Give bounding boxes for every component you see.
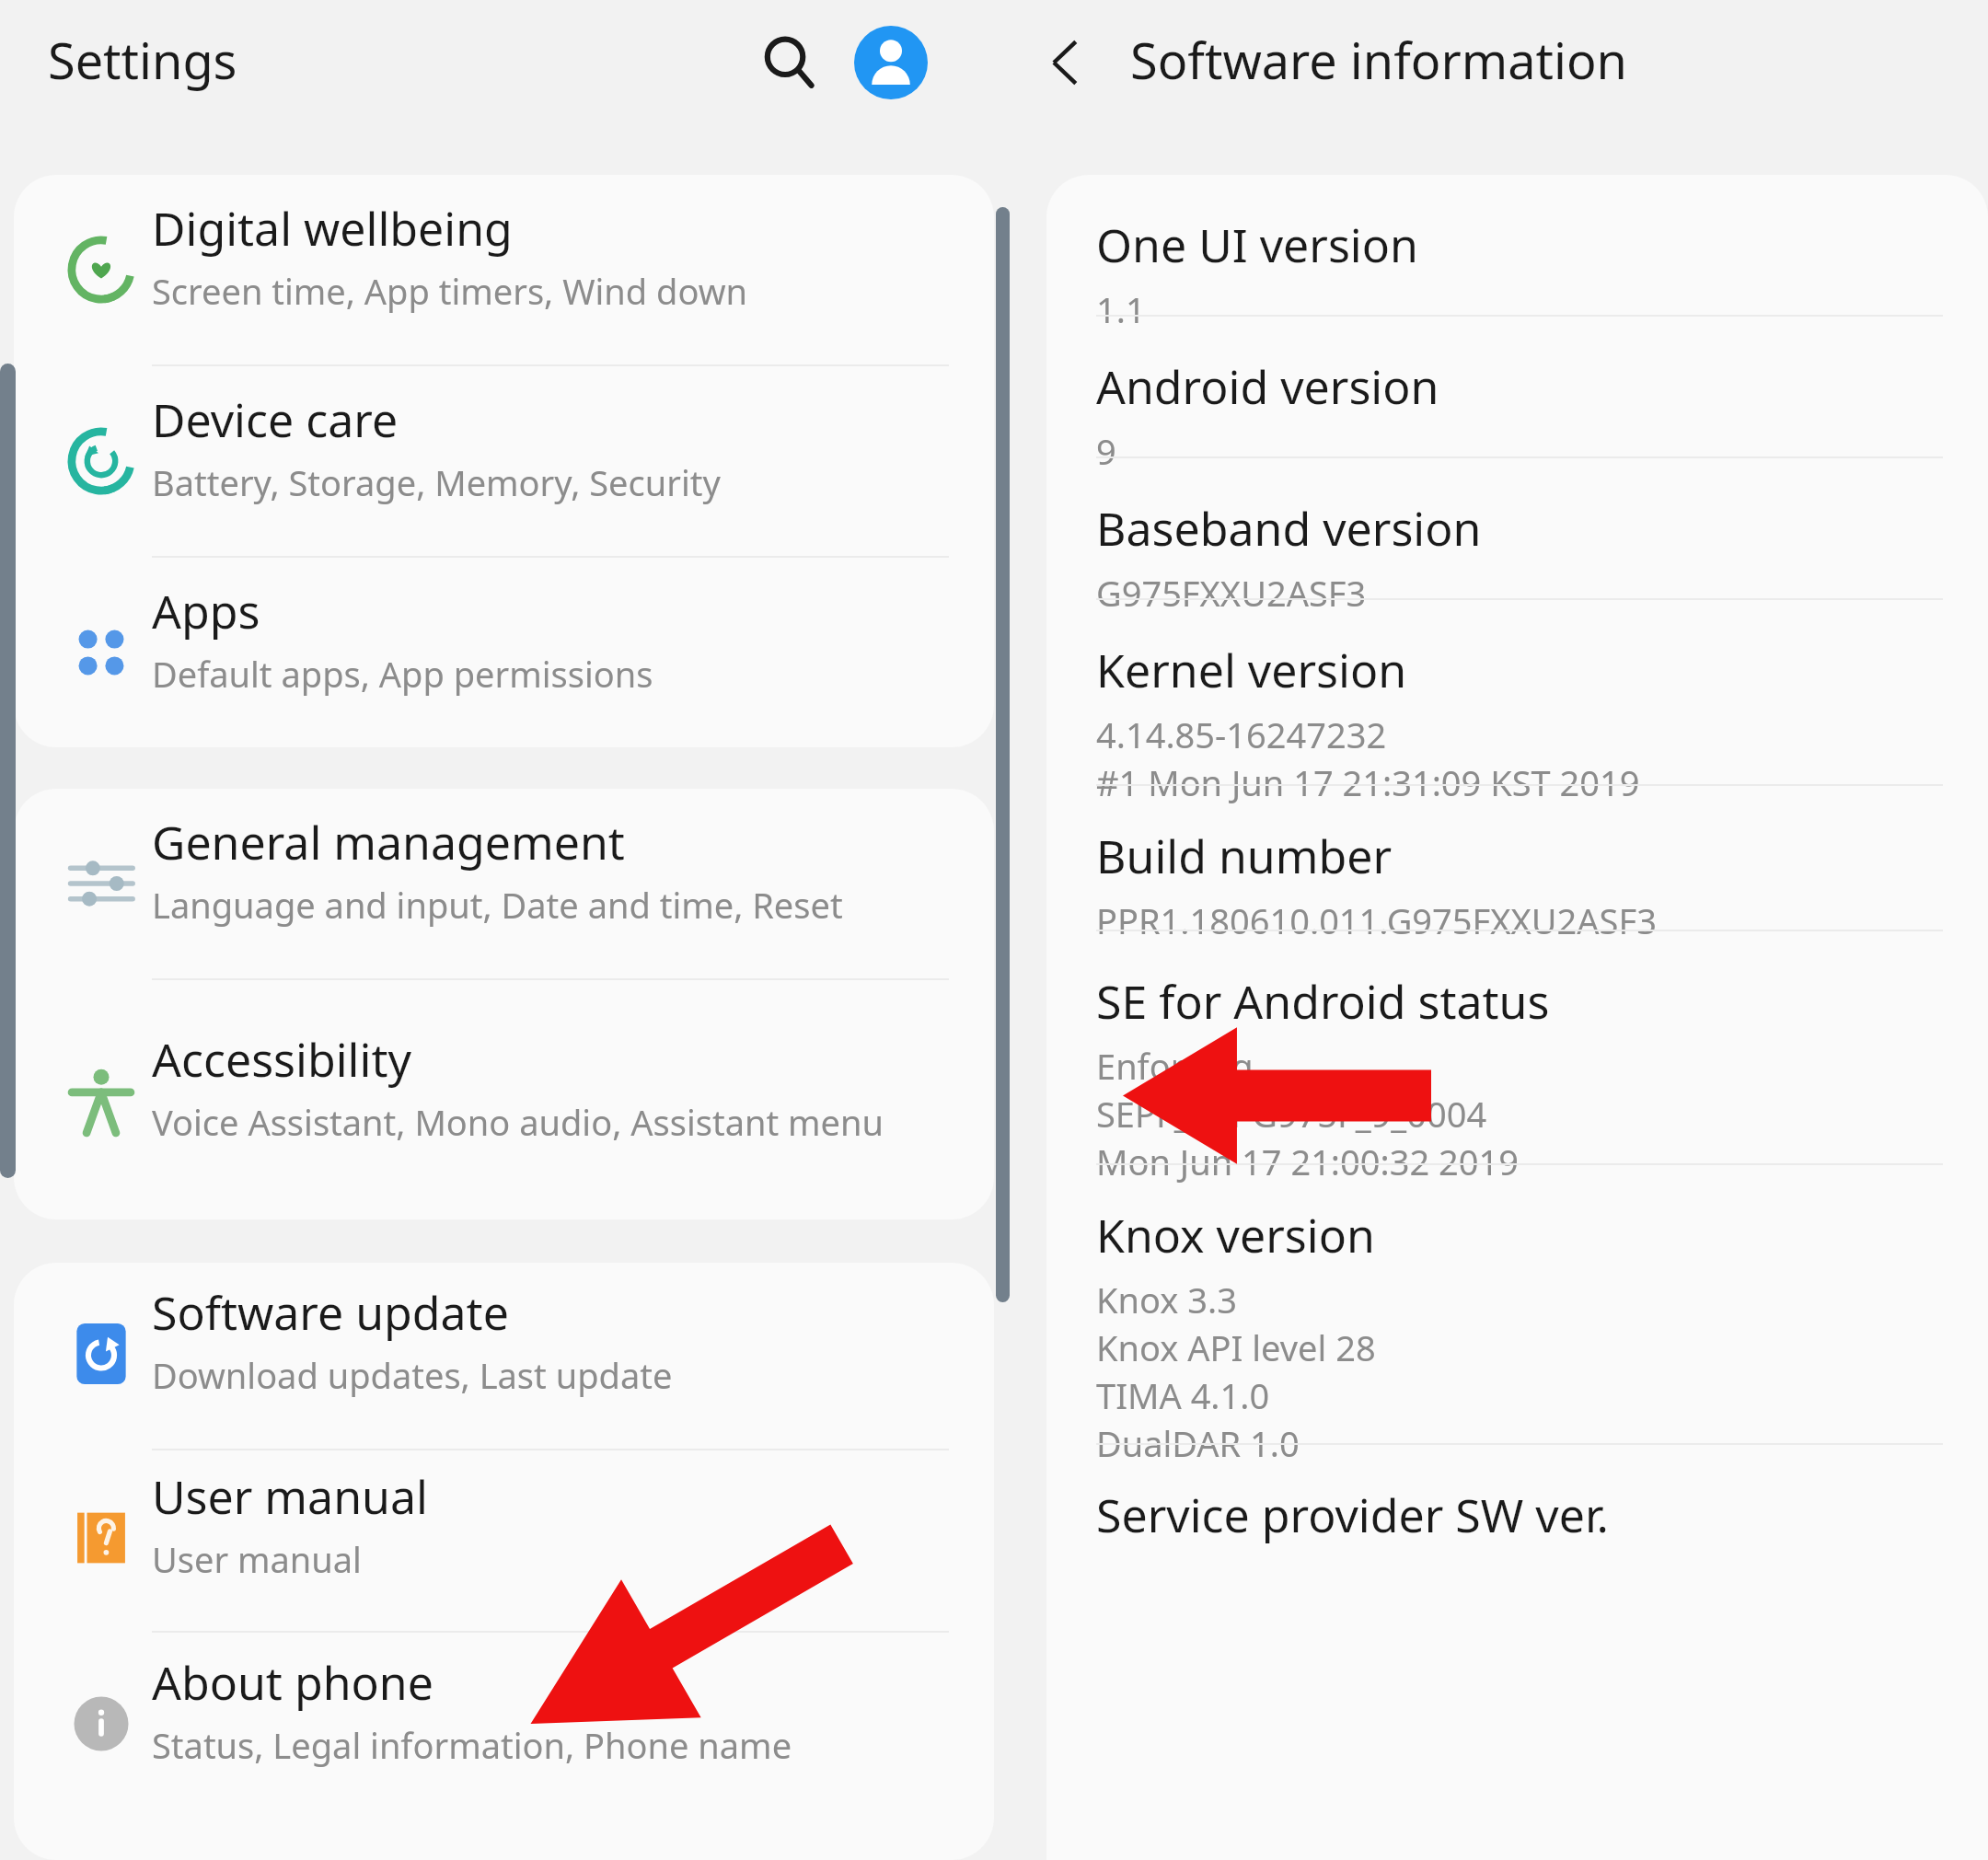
- staticText: Apps: [152, 580, 260, 642]
- staticText: Build number: [1096, 825, 1393, 887]
- staticText: Device care: [152, 388, 399, 451]
- staticText: Download updates, Last update: [152, 1351, 673, 1399]
- staticText: Kernel version: [1096, 639, 1407, 701]
- staticText: Settings: [48, 26, 237, 94]
- button[interactable]: Back: [1018, 15, 1114, 110]
- button[interactable]: Kernel version: [1046, 600, 1988, 784]
- button[interactable]: Baseband version: [1046, 458, 1988, 598]
- staticText: User manual: [152, 1465, 428, 1528]
- staticText: One UI version: [1096, 214, 1418, 276]
- staticText: Knox version: [1096, 1204, 1375, 1266]
- staticText: Mon Jun 17 21:00:32 2019: [1096, 1138, 1520, 1185]
- staticText: SEPF_SM-G975F_9_0004: [1096, 1090, 1487, 1138]
- staticText: 4.14.85-16247232: [1096, 710, 1387, 758]
- staticText: 1.1: [1096, 285, 1146, 333]
- staticText: Service provider SW ver.: [1096, 1484, 1609, 1546]
- button[interactable]: Knox version: [1046, 1165, 1988, 1443]
- staticText: PPR1.180610.011.G975FXXU2ASF3: [1096, 896, 1657, 944]
- staticText: Accessibility: [152, 1028, 411, 1091]
- staticText: Status, Legal information, Phone name: [152, 1721, 792, 1769]
- button[interactable]: General management: [14, 789, 994, 978]
- staticText: SE for Android status: [1096, 970, 1550, 1033]
- staticText: Android version: [1096, 355, 1439, 418]
- button[interactable]: User manual: [14, 1450, 994, 1631]
- button[interactable]: Build number: [1046, 786, 1988, 930]
- staticText: G975FXXU2ASF3: [1096, 569, 1367, 617]
- staticText: Screen time, App timers, Wind down: [152, 267, 747, 315]
- staticText: Default apps, App permissions: [152, 650, 653, 698]
- button[interactable]: One UI version: [1046, 175, 1988, 315]
- staticText: #1 Mon Jun 17 21:31:09 KST 2019: [1096, 758, 1640, 806]
- staticText: Knox 3.3: [1096, 1276, 1237, 1323]
- staticText: General management: [152, 811, 625, 873]
- button[interactable]: Service provider SW ver.: [1046, 1445, 1988, 1574]
- button[interactable]: Accessibility: [14, 980, 994, 1218]
- button[interactable]: Search: [744, 17, 836, 109]
- button[interactable]: SE for Android status: [1046, 931, 1988, 1163]
- button[interactable]: About phone: [14, 1633, 994, 1819]
- button[interactable]: Android version: [1046, 317, 1988, 456]
- staticText: Battery, Storage, Memory, Security: [152, 458, 721, 506]
- button[interactable]: Software update: [14, 1263, 994, 1449]
- button[interactable]: Apps: [14, 558, 994, 747]
- button[interactable]: Digital wellbeing: [14, 175, 994, 364]
- staticText: Baseband version: [1096, 497, 1482, 560]
- staticText: Language and input, Date and time, Reset: [152, 881, 843, 929]
- staticText: Voice Assistant, Mono audio, Assistant m…: [152, 1098, 884, 1146]
- staticText: User manual: [152, 1535, 362, 1583]
- staticText: TIMA 4.1.0: [1096, 1371, 1270, 1419]
- staticText: Enforcing: [1096, 1042, 1254, 1090]
- staticText: Software information: [1130, 26, 1627, 94]
- staticText: Digital wellbeing: [152, 197, 513, 260]
- button[interactable]: Samsung account: [843, 15, 939, 110]
- staticText: Knox API level 28: [1096, 1323, 1376, 1371]
- staticText: DualDAR 1.0: [1096, 1419, 1300, 1467]
- staticText: 9: [1096, 427, 1116, 475]
- staticText: About phone: [152, 1651, 433, 1714]
- staticText: Software update: [152, 1281, 509, 1344]
- button[interactable]: Device care: [14, 366, 994, 556]
